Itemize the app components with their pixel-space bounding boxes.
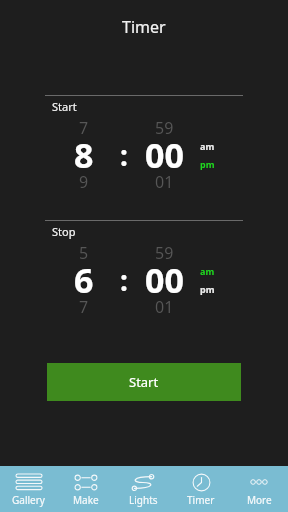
button[interactable]: Make bbox=[57, 466, 114, 512]
button[interactable]: 5 bbox=[53, 242, 115, 264]
staticText: Timer bbox=[122, 16, 166, 38]
staticText: More bbox=[247, 493, 272, 507]
button[interactable]: am bbox=[200, 140, 235, 170]
staticText: Timer bbox=[187, 493, 215, 507]
staticText: Start bbox=[129, 373, 159, 391]
staticText: am bbox=[200, 140, 215, 152]
button[interactable]: Start bbox=[47, 363, 241, 401]
staticText: : bbox=[120, 261, 128, 299]
button[interactable]: 8 bbox=[53, 132, 115, 178]
button[interactable]: 01 bbox=[133, 296, 195, 318]
button[interactable]: Gallery bbox=[0, 466, 57, 512]
button[interactable]: 01 bbox=[133, 171, 195, 193]
staticText: 7 bbox=[79, 117, 89, 139]
staticText: 6 bbox=[74, 257, 94, 303]
button[interactable]: More bbox=[230, 466, 288, 512]
button[interactable]: 59 bbox=[133, 117, 195, 139]
staticText: 59 bbox=[155, 242, 174, 264]
staticText: am bbox=[200, 265, 215, 277]
button[interactable]: Lights bbox=[114, 466, 172, 512]
staticText: 7 bbox=[79, 296, 89, 318]
staticText: Lights bbox=[129, 493, 158, 507]
staticText: : bbox=[120, 136, 128, 174]
button[interactable]: Timer bbox=[172, 466, 230, 512]
button[interactable]: 7 bbox=[53, 296, 115, 318]
staticText: 9 bbox=[79, 171, 89, 193]
staticText: Make bbox=[73, 493, 99, 507]
staticText: 01 bbox=[155, 296, 174, 318]
staticText: Gallery bbox=[12, 493, 45, 507]
button[interactable]: 9 bbox=[53, 171, 115, 193]
staticText: 01 bbox=[155, 171, 174, 193]
staticText: 8 bbox=[74, 132, 94, 178]
staticText: pm bbox=[200, 158, 215, 170]
staticText: 00 bbox=[145, 257, 184, 303]
button[interactable]: 00 bbox=[133, 132, 195, 178]
staticText: pm bbox=[200, 283, 215, 295]
staticText: Start bbox=[52, 99, 77, 114]
button[interactable]: 7 bbox=[53, 117, 115, 139]
staticText: 59 bbox=[155, 117, 174, 139]
button[interactable]: 59 bbox=[133, 242, 195, 264]
button[interactable]: 6 bbox=[53, 257, 115, 303]
staticText: Stop bbox=[52, 224, 76, 239]
staticText: 00 bbox=[145, 132, 184, 178]
button[interactable]: am bbox=[200, 265, 235, 295]
button[interactable]: 00 bbox=[133, 257, 195, 303]
staticText: 5 bbox=[79, 242, 89, 264]
